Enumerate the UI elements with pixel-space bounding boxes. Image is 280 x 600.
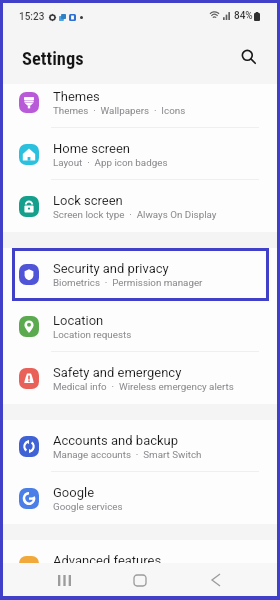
staticText: 84% [234, 10, 253, 22]
staticText: Layout · App icon badges [53, 157, 168, 168]
button[interactable]: Recents [49, 565, 79, 595]
button[interactable]: Location [3, 300, 277, 352]
staticText: Advanced features [53, 553, 162, 568]
staticText: Google [53, 485, 95, 500]
staticText: Google services [53, 501, 123, 512]
button[interactable]: Accounts and backup [3, 420, 277, 472]
button[interactable]: Search [233, 41, 263, 71]
staticText: Biometrics · Permission manager [53, 277, 203, 288]
staticText: Location [53, 313, 104, 328]
staticText: 15:23 [19, 11, 45, 23]
staticText: Home screen [53, 141, 130, 156]
staticText: Location requests [53, 329, 132, 340]
staticText: Medical info · Wireless emergency alerts [53, 381, 234, 392]
button[interactable]: Safety and emergency [3, 352, 277, 404]
staticText: Safety and emergency [53, 365, 182, 380]
staticText: Accounts and backup [53, 433, 179, 448]
staticText: Lock screen [53, 193, 123, 208]
staticText: Themes · Wallpapers · Icons [53, 105, 186, 116]
button[interactable]: Home [125, 565, 155, 595]
staticText: Labs · Link to Windows [53, 569, 159, 580]
button[interactable]: Google [3, 472, 277, 524]
staticText: Themes [53, 89, 100, 104]
button[interactable]: Lock screen [3, 180, 277, 232]
staticText: Security and privacy [53, 261, 169, 276]
button[interactable]: Security and privacy [3, 248, 277, 300]
staticText: Settings [22, 48, 84, 70]
button[interactable]: Advanced features [3, 540, 277, 592]
button[interactable]: Themes [3, 76, 277, 128]
button[interactable]: Back [201, 565, 231, 595]
staticText: Manage accounts · Smart Switch [53, 449, 202, 460]
staticText: Screen lock type · Always On Display [53, 209, 217, 220]
button[interactable]: Home screen [3, 128, 277, 180]
